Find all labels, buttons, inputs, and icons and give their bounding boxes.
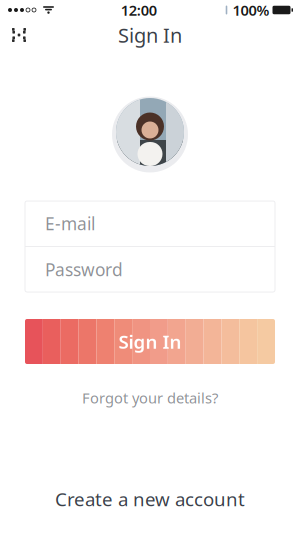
staticText: Forgot your details? [82,388,218,407]
staticText: 100% [232,0,269,20]
staticText: Create a new account [55,487,245,511]
button[interactable]: Forgot your details? [68,382,232,413]
button[interactable]: Close [1,19,37,51]
button[interactable]: Password [25,247,275,292]
button[interactable]: E-mail [25,201,275,246]
staticText: E-mail [45,212,95,235]
staticText: Sign In [118,329,181,354]
button[interactable]: Sign In [25,319,275,364]
staticText: Sign In [118,22,182,48]
staticText: 12:00 [121,0,157,20]
staticText: Password [45,258,123,281]
button[interactable]: Create a new account [0,473,300,525]
